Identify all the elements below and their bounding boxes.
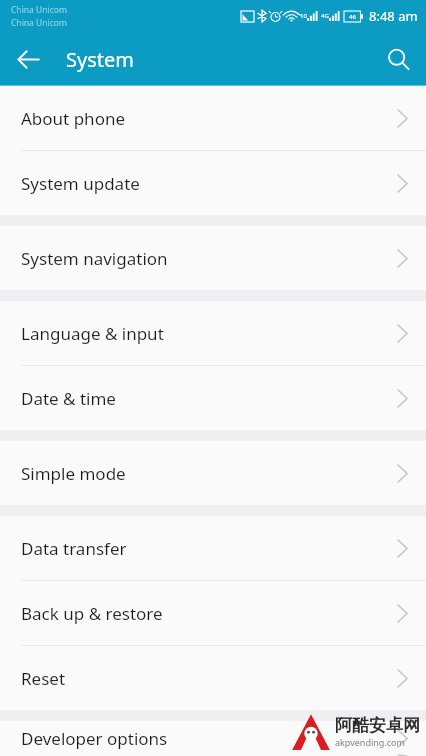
staticText: Reset	[21, 667, 397, 690]
staticText: Simple mode	[21, 462, 397, 485]
staticText: 阿酷安卓网	[335, 715, 420, 736]
button[interactable]: Developer options	[0, 721, 426, 756]
button[interactable]: Search	[370, 32, 426, 86]
button[interactable]: Date & time	[0, 366, 426, 430]
staticText: akpvending.com	[335, 736, 405, 748]
staticText: Date & time	[21, 387, 397, 410]
staticText: System	[66, 46, 370, 73]
staticText: China Unicom	[11, 4, 67, 16]
button[interactable]: Language & input	[0, 301, 426, 366]
staticText: 46	[349, 13, 356, 21]
button[interactable]: System update	[0, 151, 426, 215]
button[interactable]: Simple mode	[0, 441, 426, 505]
button[interactable]: Data transfer	[0, 516, 426, 581]
button[interactable]: Reset	[0, 646, 426, 710]
button[interactable]: About phone	[0, 86, 426, 151]
staticText: Developer options	[21, 727, 397, 750]
staticText: 4G	[321, 12, 329, 20]
staticText: Back up & restore	[21, 602, 397, 625]
staticText: China Unicom	[11, 17, 67, 29]
staticText: System navigation	[21, 247, 397, 270]
staticText: Language & input	[21, 322, 397, 345]
staticText: About phone	[21, 107, 397, 130]
staticText: 10	[300, 12, 307, 20]
staticText: 8:48 am	[369, 7, 418, 25]
button[interactable]: Back up & restore	[0, 581, 426, 646]
staticText: System update	[21, 172, 397, 195]
button[interactable]: System navigation	[0, 226, 426, 290]
button[interactable]: Back	[0, 32, 56, 86]
staticText: Data transfer	[21, 537, 397, 560]
